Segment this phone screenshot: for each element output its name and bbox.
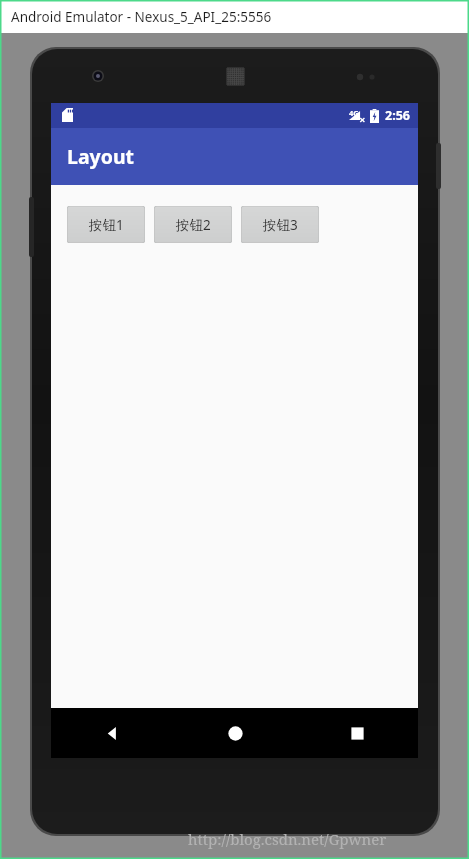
staticText: Android Emulator - Nexus_5_API_25:5556 [11,8,272,26]
staticText: http://blog.csdn.net/Gpwner [188,829,387,849]
button[interactable]: 按钮2 [154,206,232,243]
button[interactable]: 按钮1 [67,206,145,243]
staticText: Layout [67,143,135,170]
staticText: 4G [349,108,359,118]
staticText: 2:56 [385,107,410,124]
button[interactable]: Recent apps [296,708,418,758]
staticText: 按钮3 [263,216,298,234]
button[interactable]: 按钮3 [241,206,319,243]
button[interactable]: Home [174,708,296,758]
staticText: 按钮1 [89,216,124,234]
button[interactable]: Back [51,708,174,758]
staticText: 按钮2 [176,216,211,234]
